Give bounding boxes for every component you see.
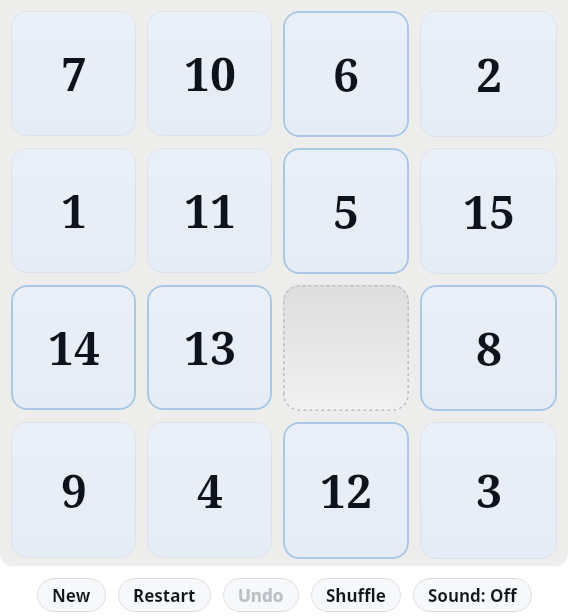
button[interactable]: 3 <box>420 422 557 559</box>
staticText: 4 <box>197 459 223 522</box>
button[interactable]: Sound: Off <box>413 578 532 612</box>
button[interactable]: 4 <box>147 422 272 558</box>
staticText: Restart <box>133 584 196 607</box>
staticText: New <box>52 584 91 607</box>
staticText: 15 <box>463 180 515 243</box>
button[interactable]: 12 <box>283 422 409 559</box>
button[interactable]: 15 <box>420 148 557 274</box>
staticText: 10 <box>184 42 236 105</box>
button[interactable]: 6 <box>283 11 409 137</box>
button[interactable]: Shuffle <box>311 578 401 612</box>
button[interactable]: Undo <box>223 578 299 612</box>
staticText: 1 <box>61 179 87 242</box>
staticText: 13 <box>184 316 236 379</box>
staticText: Sound: Off <box>428 584 517 607</box>
button[interactable]: 7 <box>11 11 136 136</box>
button[interactable]: 11 <box>147 148 272 273</box>
staticText: 7 <box>61 42 87 105</box>
staticText: 9 <box>61 459 87 522</box>
staticText: 12 <box>320 459 372 522</box>
staticText: 14 <box>48 316 100 379</box>
staticText: Shuffle <box>326 584 386 607</box>
button[interactable]: 8 <box>420 285 557 411</box>
button[interactable]: Restart <box>118 578 211 612</box>
button[interactable]: 5 <box>283 148 409 274</box>
staticText: 8 <box>476 317 502 380</box>
button[interactable]: 10 <box>147 11 272 136</box>
staticText: Undo <box>238 584 284 607</box>
staticText: 5 <box>333 180 359 243</box>
button[interactable]: 1 <box>11 148 136 273</box>
button[interactable]: 13 <box>147 285 272 410</box>
staticText: 6 <box>333 43 359 106</box>
button[interactable]: 9 <box>11 422 136 558</box>
staticText: 3 <box>476 459 502 522</box>
staticText: 2 <box>476 43 502 106</box>
button[interactable]: New <box>37 578 106 612</box>
button[interactable]: 14 <box>11 285 136 410</box>
button[interactable]: 2 <box>420 11 557 137</box>
staticText: 11 <box>184 179 236 242</box>
